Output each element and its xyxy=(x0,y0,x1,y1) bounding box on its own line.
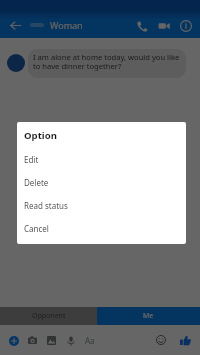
button[interactable]: Me xyxy=(97,307,200,325)
staticText: Aa xyxy=(85,335,95,346)
staticText: Delete xyxy=(24,177,49,188)
button[interactable]: Cancel xyxy=(17,217,186,240)
staticText: Cancel xyxy=(24,223,49,234)
button[interactable]: Video call xyxy=(153,15,174,36)
button[interactable]: Delete xyxy=(17,171,186,194)
button[interactable]: Emoji xyxy=(152,331,170,349)
staticText: Edit xyxy=(24,154,39,165)
staticText: Me xyxy=(143,311,154,321)
button[interactable]: More xyxy=(4,331,23,350)
button[interactable]: Like xyxy=(176,331,194,349)
button[interactable]: Edit xyxy=(17,148,186,171)
button[interactable]: Opponent xyxy=(0,307,97,325)
button[interactable]: Back xyxy=(4,14,26,36)
staticText: Opponent xyxy=(32,311,66,321)
button[interactable]: Call xyxy=(131,15,152,36)
staticText: I am alone at home today, would you like… xyxy=(33,52,181,71)
button[interactable]: Text xyxy=(80,331,99,350)
button[interactable]: Gallery xyxy=(42,331,61,350)
button[interactable]: Voice xyxy=(61,331,80,350)
staticText: Option xyxy=(24,129,57,142)
button[interactable]: Camera xyxy=(23,331,42,350)
staticText: Read status xyxy=(24,200,68,211)
button[interactable]: Read status xyxy=(17,194,186,217)
staticText: Woman xyxy=(50,19,83,31)
button[interactable]: Info xyxy=(175,15,196,36)
